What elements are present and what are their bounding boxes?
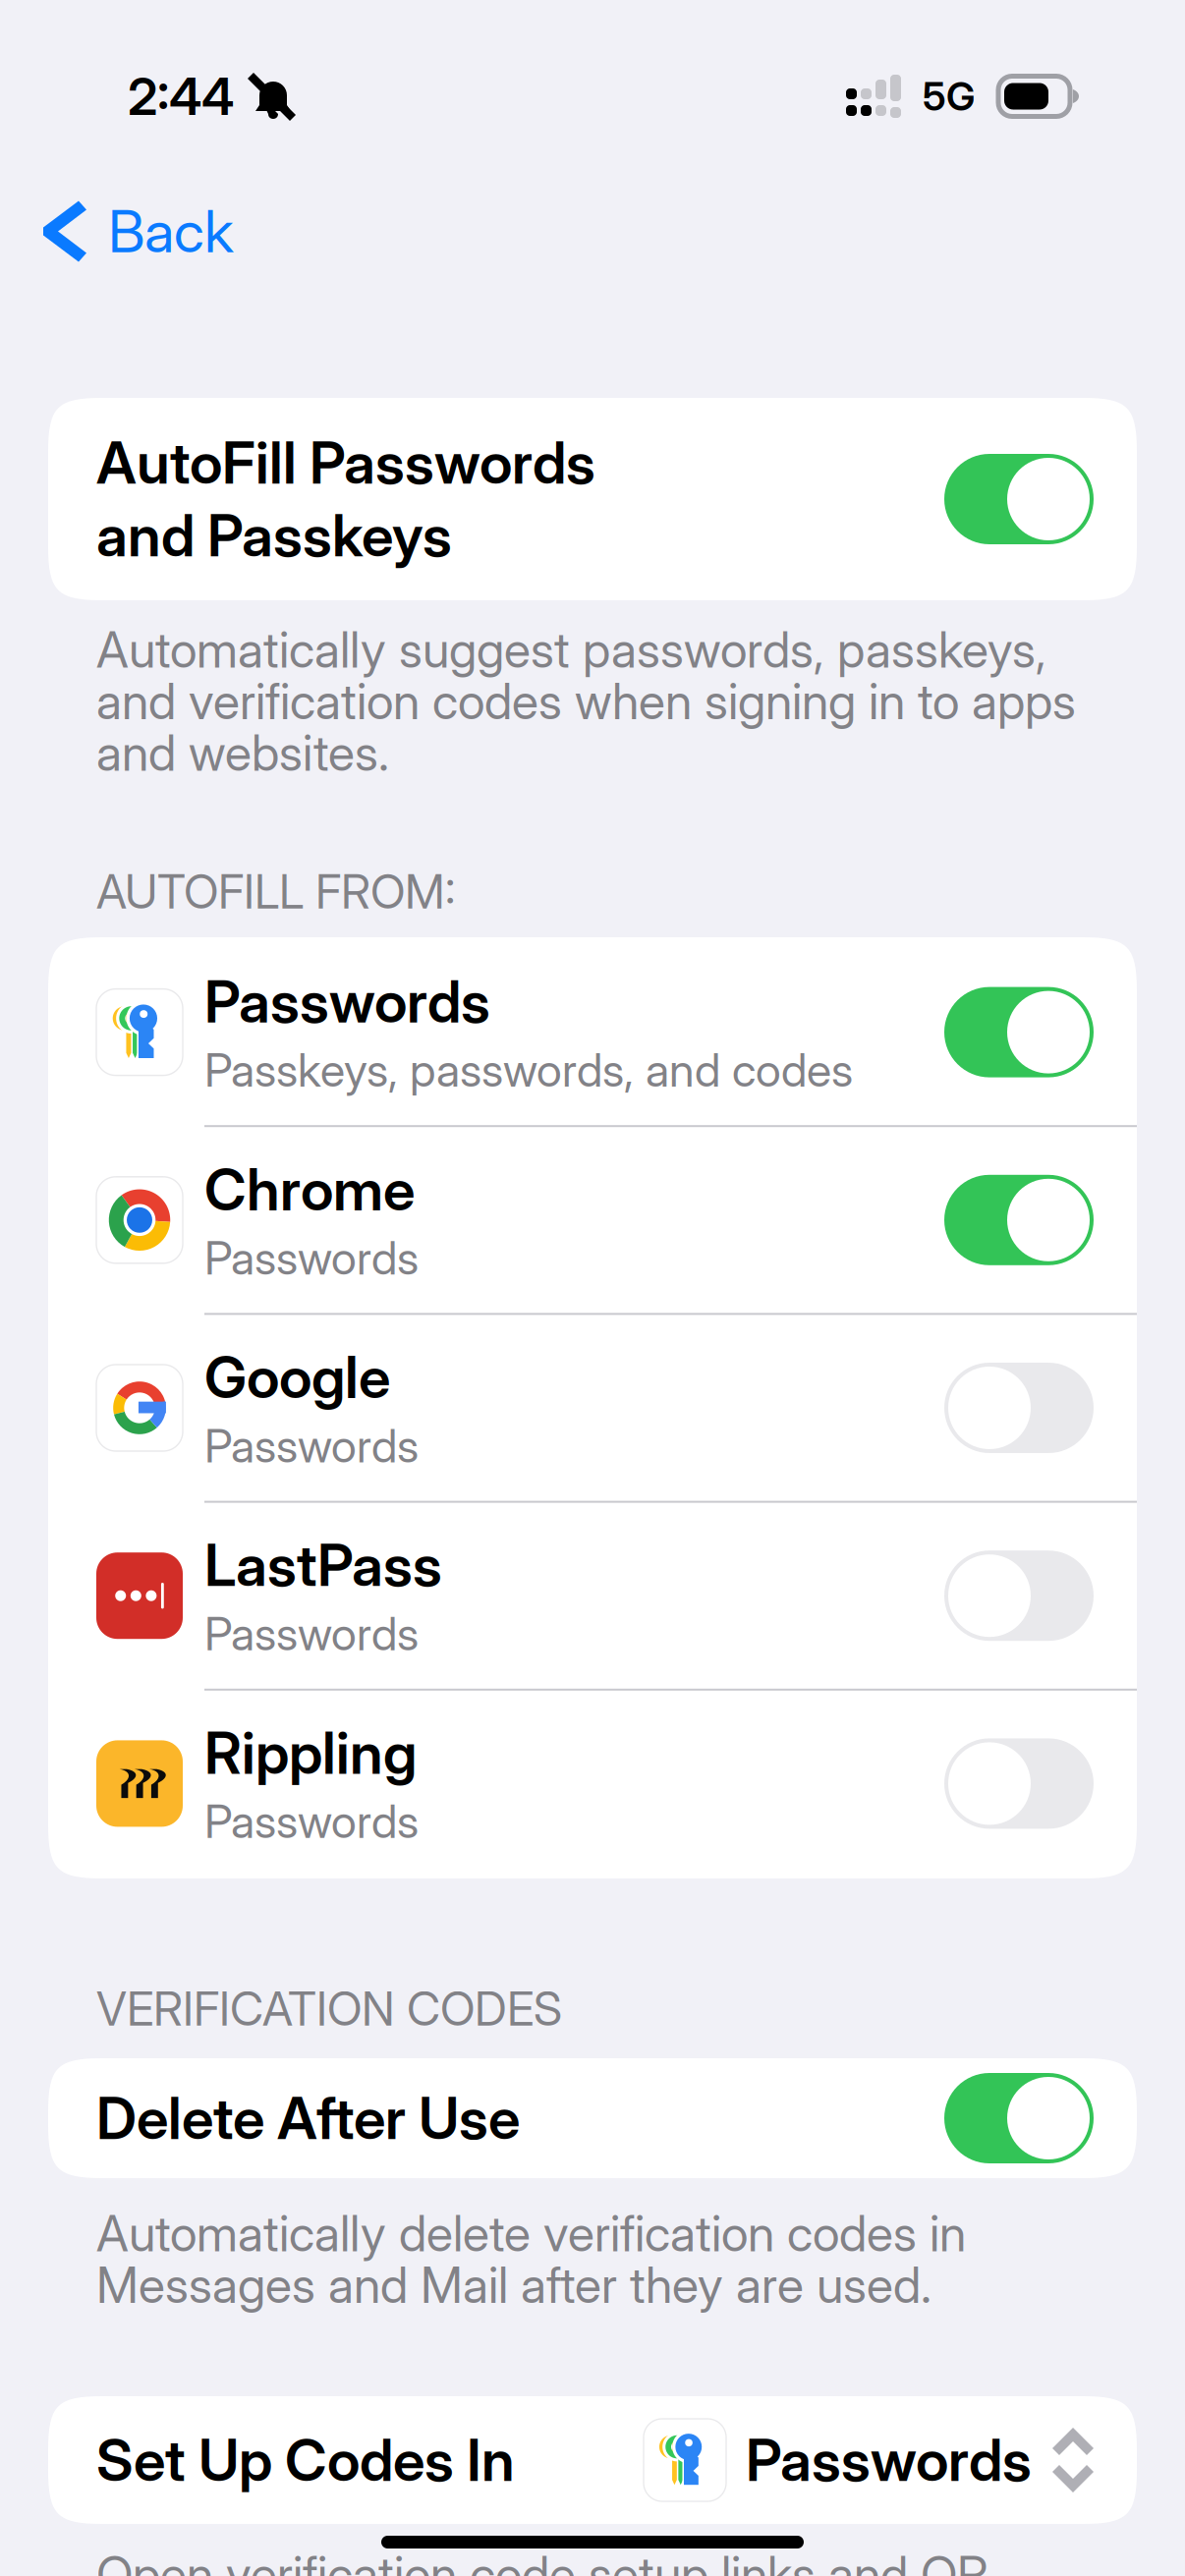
button[interactable]: Passwords <box>48 939 1137 1125</box>
staticText: AUTOFILL FROM: <box>96 864 455 920</box>
staticText: Delete After Use <box>96 2083 520 2153</box>
staticText: VERIFICATION CODES <box>96 1981 562 2037</box>
button[interactable]: Chrome <box>48 1127 1137 1313</box>
staticText: Passwords <box>204 1230 419 1286</box>
staticText: Set Up Codes In <box>96 2425 515 2495</box>
staticText: LastPass <box>204 1530 442 1600</box>
button[interactable]: LastPass <box>48 1503 1137 1689</box>
staticText: Passwords <box>204 967 490 1036</box>
button[interactable]: Rippling <box>48 1691 1137 1876</box>
staticText: Passkeys, passwords, and codes <box>204 1042 853 1098</box>
staticText: Passwords <box>204 1418 419 1473</box>
staticText: Passwords <box>204 1606 419 1661</box>
staticText: Passwords <box>746 2425 1032 2495</box>
staticText: Rippling <box>204 1718 417 1788</box>
staticText: Chrome <box>204 1154 415 1224</box>
staticText: 5G <box>923 73 975 120</box>
staticText: Passwords <box>204 1794 419 1849</box>
staticText: 2:44 <box>128 65 234 127</box>
staticText: Open verification code setup links and Q… <box>96 2545 988 2576</box>
button[interactable]: AutoFill Passwords and Passkeys <box>48 398 1137 600</box>
staticText: Back <box>108 196 234 266</box>
button[interactable]: Back <box>20 175 255 288</box>
staticText: Automatically suggest passwords, passkey… <box>96 620 1076 783</box>
button[interactable]: Google <box>48 1315 1137 1501</box>
staticText: Google <box>204 1342 390 1412</box>
staticText: Automatically delete verification codes … <box>96 2204 966 2315</box>
staticText: AutoFill Passwords and Passkeys <box>96 428 595 570</box>
button[interactable]: Delete After Use <box>48 2058 1137 2178</box>
button[interactable]: Set Up Codes In <box>48 2396 1137 2524</box>
